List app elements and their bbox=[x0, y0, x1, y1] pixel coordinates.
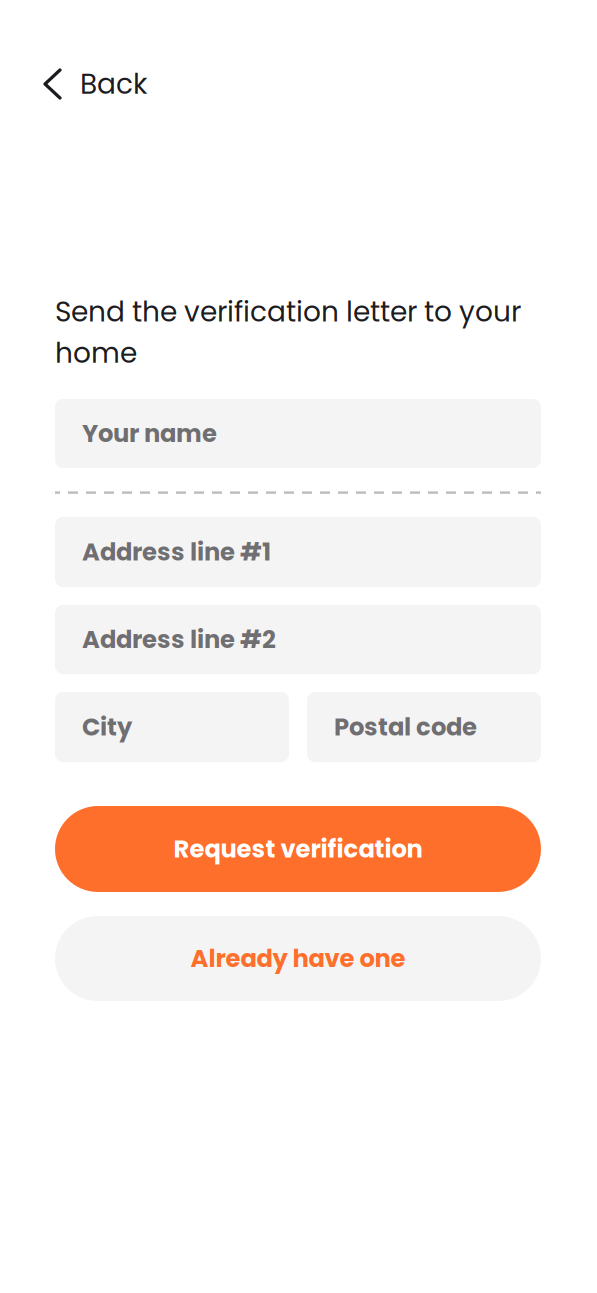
staticText: Back bbox=[80, 64, 147, 104]
button[interactable]: Request verification bbox=[55, 806, 541, 892]
staticText: Address line #2 bbox=[82, 622, 276, 656]
button[interactable]: Already have one bbox=[55, 916, 541, 1001]
button[interactable]: Address line #2 bbox=[55, 605, 541, 674]
staticText: City bbox=[82, 710, 132, 744]
staticText: Your name bbox=[82, 416, 217, 450]
button[interactable]: City bbox=[55, 692, 289, 762]
staticText: Send the verification letter to your hom… bbox=[55, 292, 521, 373]
staticText: Address line #1 bbox=[82, 535, 271, 569]
button[interactable]: Postal code bbox=[307, 692, 541, 762]
button[interactable]: Your name bbox=[55, 399, 541, 468]
staticText: Already have one bbox=[190, 941, 405, 975]
staticText: Request verification bbox=[173, 832, 422, 866]
staticText: Postal code bbox=[334, 710, 477, 744]
button[interactable]: Address line #1 bbox=[55, 517, 541, 587]
button[interactable]: Back bbox=[0, 52, 265, 116]
